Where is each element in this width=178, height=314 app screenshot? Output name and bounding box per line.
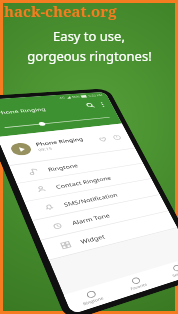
- button[interactable]: SMS/Notification: [7, 163, 159, 191]
- button[interactable]: Alarm Tone: [7, 192, 159, 220]
- staticText: SMS/Notification: [45, 172, 108, 183]
- staticText: Alarm Tone: [45, 201, 88, 212]
- button[interactable]: Settings: [108, 298, 159, 314]
- staticText: hack-cheat.org: [4, 1, 117, 21]
- button[interactable]: Ringtone: [7, 298, 57, 314]
- staticText: Widget: [45, 230, 72, 241]
- button[interactable]: Widget: [7, 221, 159, 249]
- staticText: gorgeous ringtones!: [27, 47, 152, 65]
- button[interactable]: Phone Ringing: [7, 56, 159, 104]
- button[interactable]: Ringtone: [7, 105, 159, 133]
- staticText: Ringtone: [45, 114, 80, 125]
- staticText: Contact Ringtone: [45, 143, 111, 154]
- staticText: Phone Ringing: [17, 9, 73, 20]
- button[interactable]: Favorite: [57, 298, 108, 314]
- staticText: Easy to use,: [53, 27, 125, 45]
- staticText: Favorite: [73, 313, 92, 314]
- button[interactable]: Contact Ringtone: [7, 134, 159, 162]
